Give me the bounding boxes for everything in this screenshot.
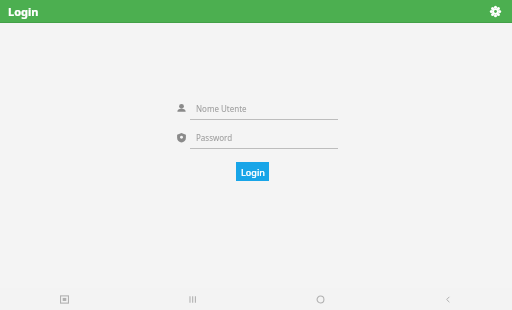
button[interactable]: Home [256, 288, 384, 310]
staticText: Login [241, 166, 265, 178]
staticText: Nome Utente [196, 103, 247, 114]
button[interactable]: Nome Utente [174, 101, 338, 120]
button[interactable]: Recent apps [128, 288, 256, 310]
staticText: Login [8, 4, 39, 19]
button[interactable]: Password [174, 130, 338, 149]
button[interactable]: Login [236, 162, 269, 181]
staticText: Password [196, 132, 233, 143]
button[interactable]: Settings [486, 2, 504, 20]
button[interactable]: Hide keyboard [0, 288, 128, 310]
